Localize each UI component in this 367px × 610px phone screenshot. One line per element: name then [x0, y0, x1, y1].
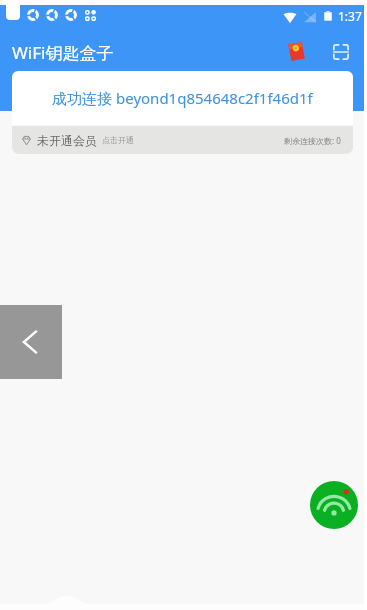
button[interactable]: Scan QR code — [320, 31, 361, 72]
staticText: WiFi钥匙盒子 — [12, 41, 114, 64]
staticText: 1:37 — [338, 8, 362, 24]
button[interactable]: 未开通会员 — [12, 126, 353, 154]
staticText: 未开通会员 — [37, 133, 97, 148]
staticText: 点击开通 — [102, 135, 134, 145]
button[interactable]: Connect to WiFi — [310, 481, 358, 529]
staticText: beyond1q854648c2f1f46d1f — [116, 88, 313, 108]
button[interactable]: Back — [0, 305, 62, 379]
button[interactable]: Red packet — [276, 31, 317, 72]
staticText: 成功连接 — [52, 88, 116, 108]
staticText: 剩余连接次数: 0 — [284, 135, 341, 146]
button[interactable]: 成功连接 — [12, 71, 353, 125]
